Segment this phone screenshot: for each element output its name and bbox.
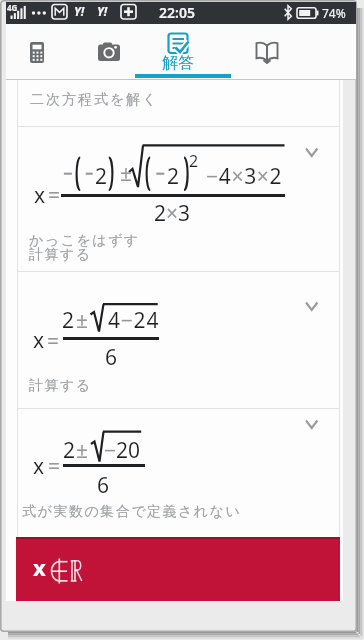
- button[interactable]: [10, 26, 94, 78]
- staticText: 2: [189, 150, 199, 172]
- button[interactable]: [16, 537, 340, 601]
- staticText: 2×3: [154, 199, 191, 228]
- staticText: −20: [104, 436, 141, 465]
- staticText: 2: [62, 306, 75, 335]
- button[interactable]: [142, 26, 224, 78]
- button[interactable]: [17, 271, 340, 408]
- staticText: x: [33, 552, 46, 582]
- staticText: 74%: [322, 5, 346, 21]
- staticText: x: [33, 326, 45, 355]
- staticText: =: [47, 327, 60, 356]
- staticText: ±: [120, 159, 133, 188]
- staticText: 解答: [162, 53, 194, 73]
- staticText: −4×3×2: [206, 162, 283, 191]
- staticText: =: [48, 452, 61, 481]
- staticText: ±: [76, 436, 89, 465]
- staticText: 2: [63, 436, 76, 465]
- staticText: 式が実数の集合で定義されない: [22, 503, 242, 521]
- staticText: 計算する: [29, 377, 92, 395]
- staticText: 2: [95, 162, 108, 191]
- staticText: かっこをはずす: [29, 232, 140, 250]
- staticText: ±: [76, 306, 89, 335]
- button[interactable]: [94, 26, 136, 78]
- staticText: 22:05: [159, 3, 195, 22]
- staticText: x: [33, 452, 45, 481]
- staticText: Y!: [74, 3, 85, 19]
- staticText: 6: [97, 471, 110, 500]
- staticText: 2: [167, 162, 180, 191]
- staticText: 6: [105, 343, 118, 372]
- button[interactable]: [226, 26, 308, 78]
- button[interactable]: [17, 408, 340, 537]
- staticText: 計算する: [29, 246, 92, 264]
- staticText: 4G: [7, 2, 18, 13]
- staticText: 二次方程式を解く: [30, 91, 159, 109]
- staticText: =: [48, 181, 61, 210]
- button[interactable]: [17, 126, 340, 271]
- staticText: x: [34, 181, 46, 210]
- staticText: Y!: [97, 3, 108, 19]
- staticText: 4−24: [108, 306, 160, 335]
